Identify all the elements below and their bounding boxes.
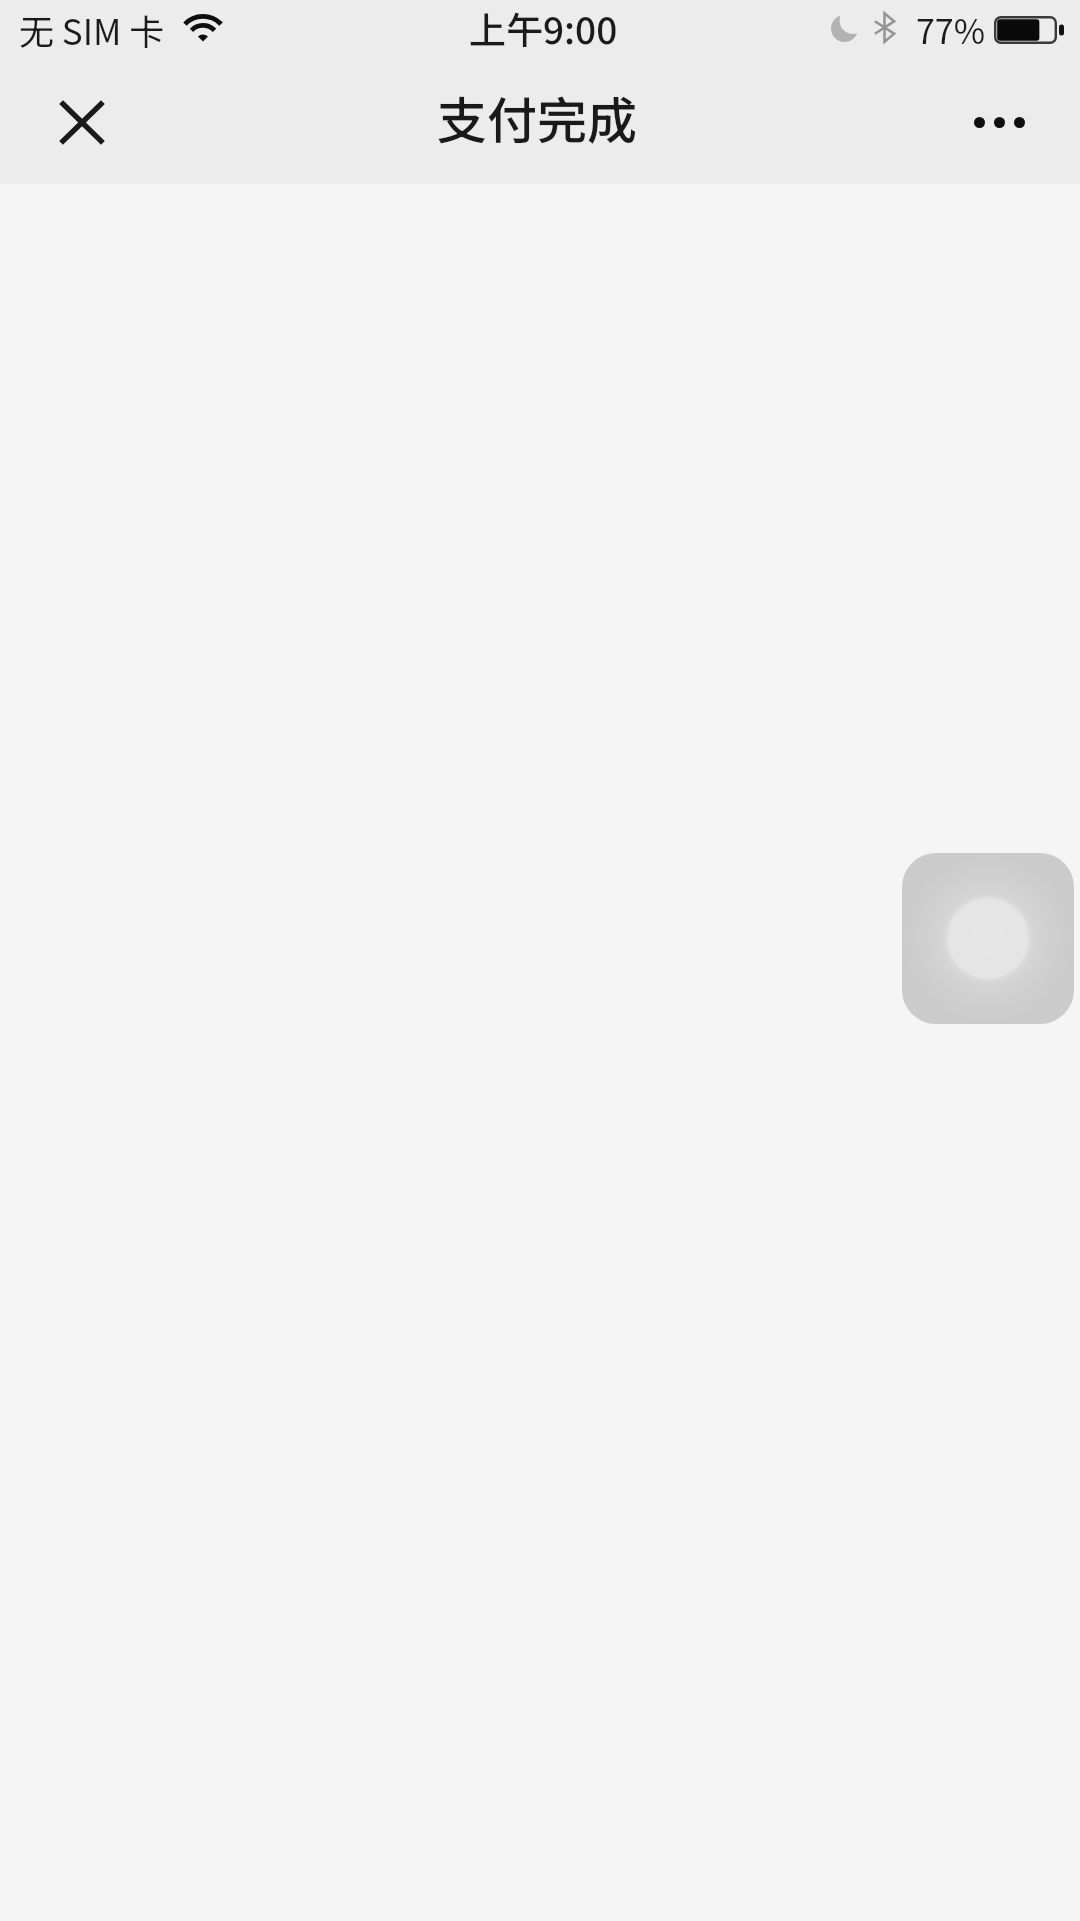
staticText: 支付完成 bbox=[437, 81, 637, 153]
button[interactable]: Close bbox=[39, 79, 125, 165]
staticText: 上午9:00 bbox=[469, 1, 618, 55]
button[interactable]: More options bbox=[953, 79, 1045, 165]
other: Loading bbox=[902, 853, 1074, 1024]
staticText: 77% bbox=[916, 5, 986, 54]
staticText: 无 SIM 卡 bbox=[19, 4, 165, 55]
